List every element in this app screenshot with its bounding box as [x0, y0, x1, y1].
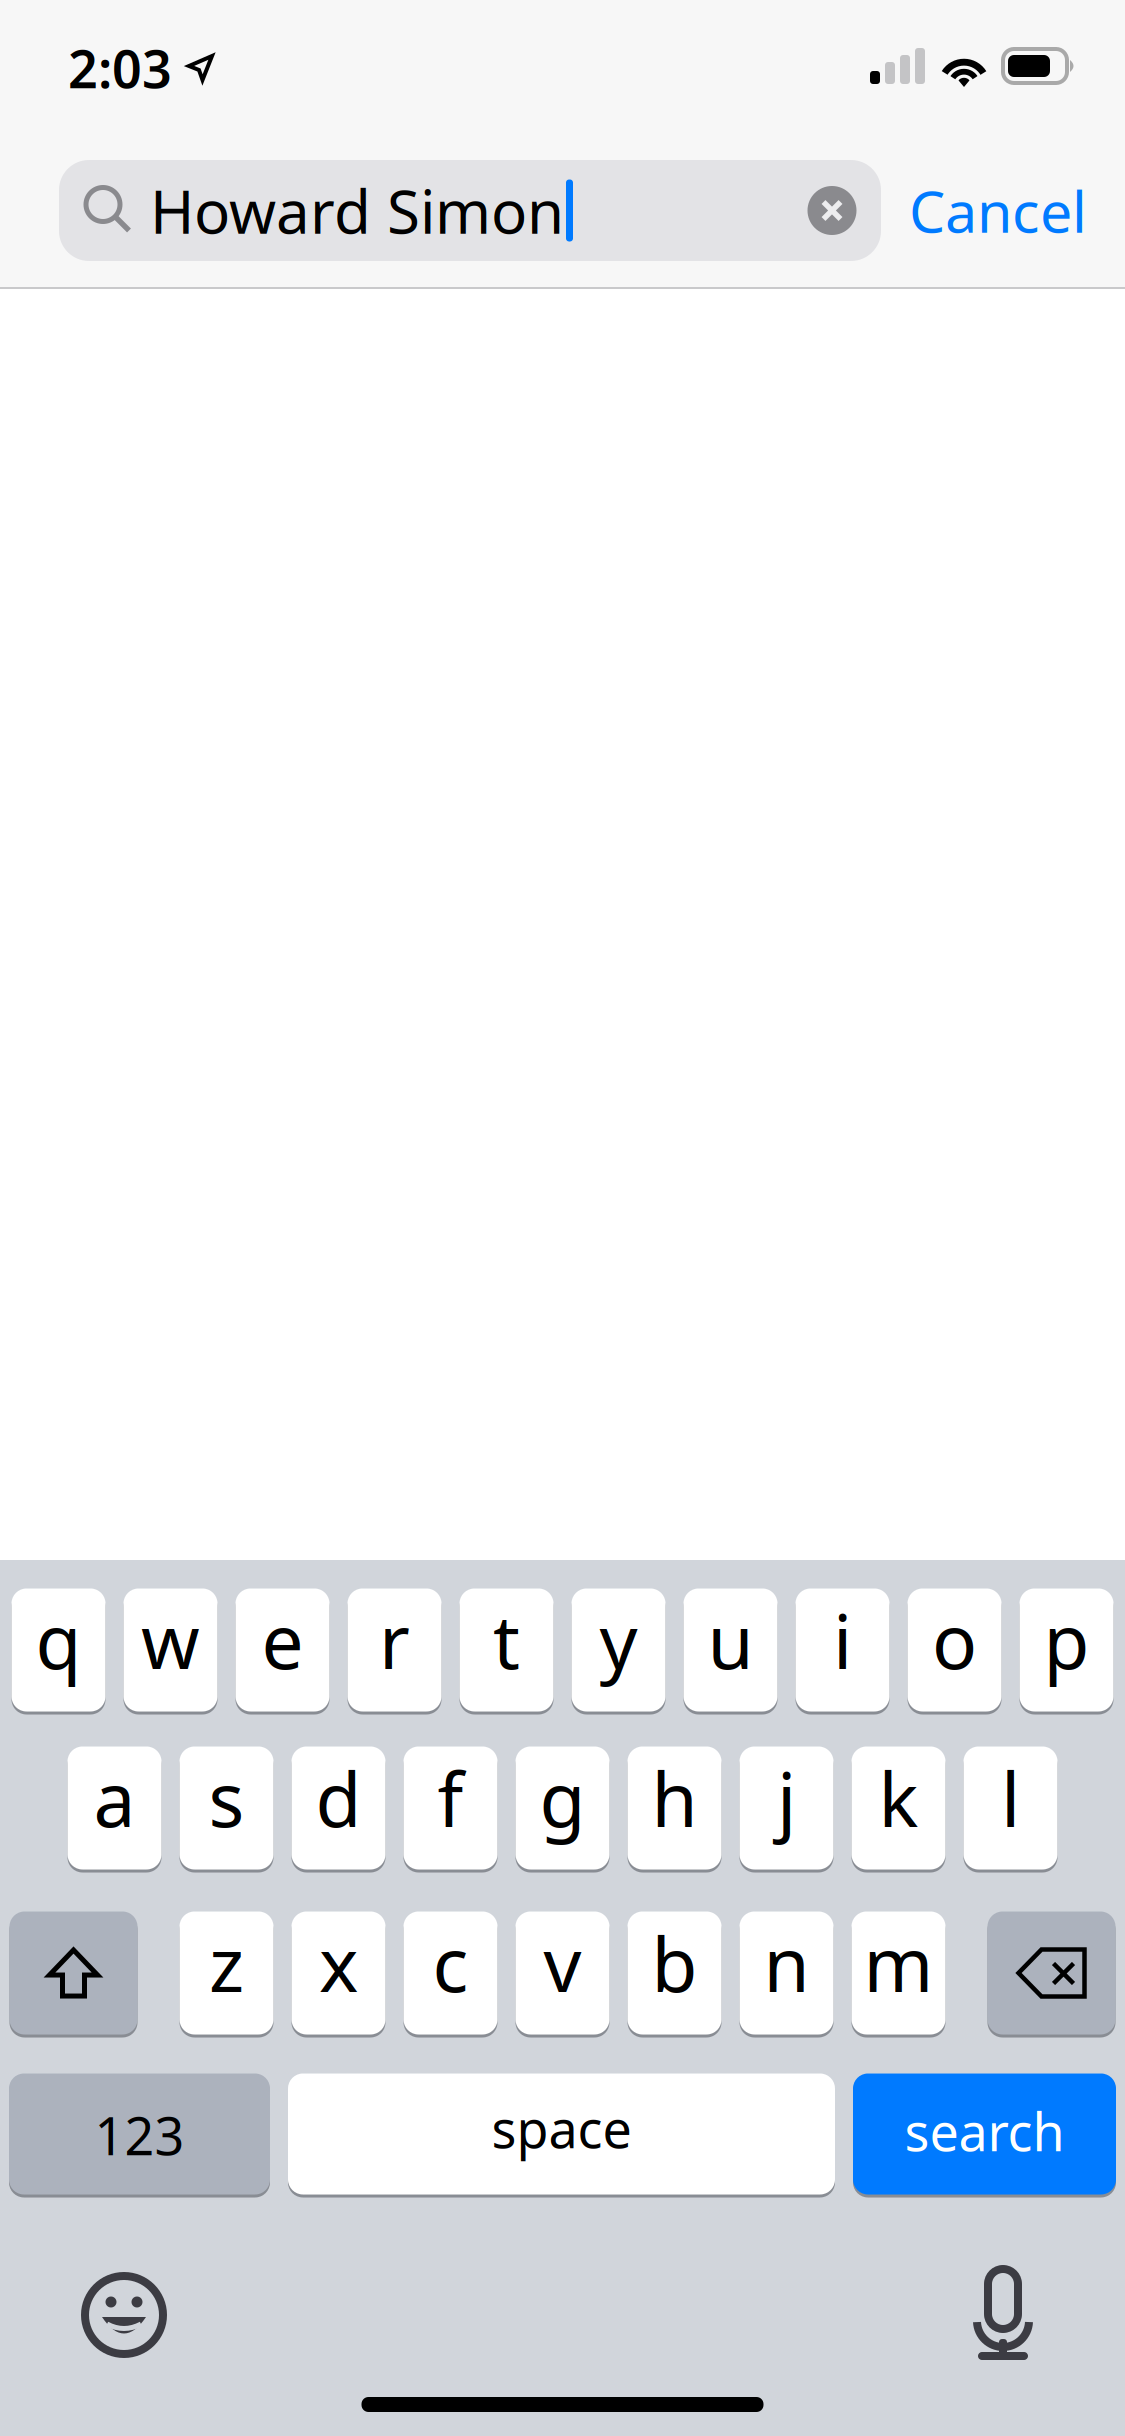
button[interactable]: Dictation [955, 2267, 1051, 2363]
staticText: s [208, 1748, 244, 1848]
staticText: n [763, 1913, 809, 2013]
staticText: j [777, 1748, 796, 1848]
button[interactable]: q [11, 1587, 105, 1713]
button[interactable]: w [123, 1587, 217, 1713]
staticText: 123 [94, 2100, 184, 2170]
staticText: z [209, 1913, 244, 2013]
staticText: y [599, 1590, 637, 1690]
staticText: t [493, 1590, 520, 1690]
staticText: u [707, 1590, 753, 1690]
button[interactable]: y [571, 1587, 665, 1713]
staticText: space [491, 2093, 631, 2163]
button[interactable]: a [67, 1745, 161, 1871]
button[interactable]: r [347, 1587, 441, 1713]
staticText: q [35, 1590, 81, 1690]
button[interactable]: v [515, 1910, 609, 2036]
button[interactable]: b [627, 1910, 721, 2036]
button[interactable]: h [627, 1745, 721, 1871]
staticText: f [437, 1748, 463, 1848]
button[interactable]: Emoji keyboard [76, 2267, 172, 2363]
button[interactable]: l [963, 1745, 1057, 1871]
staticText: Howard Simon [150, 171, 564, 250]
button[interactable]: d [291, 1745, 385, 1871]
staticText: e [261, 1590, 303, 1690]
button[interactable]: k [851, 1745, 945, 1871]
button[interactable]: z [179, 1910, 273, 2036]
button[interactable]: n [739, 1910, 833, 2036]
staticText: h [651, 1748, 697, 1848]
staticText: k [878, 1748, 918, 1848]
staticText: o [932, 1590, 977, 1690]
button[interactable]: e [235, 1587, 329, 1713]
button[interactable]: o [907, 1587, 1001, 1713]
button[interactable]: Delete [987, 1910, 1115, 2036]
staticText: b [651, 1913, 697, 2013]
staticText: i [833, 1590, 852, 1690]
button[interactable]: f [403, 1745, 497, 1871]
staticText: l [1001, 1748, 1020, 1848]
button[interactable]: i [795, 1587, 889, 1713]
button[interactable]: t [459, 1587, 553, 1713]
button[interactable]: search [853, 2072, 1116, 2196]
staticText: d [315, 1748, 361, 1848]
staticText: v [543, 1913, 581, 2013]
button[interactable]: Shift [9, 1910, 137, 2036]
staticText: g [539, 1748, 585, 1848]
button[interactable]: space [288, 2072, 835, 2196]
button[interactable]: Cancel [881, 160, 1115, 261]
staticText: c [432, 1913, 468, 2013]
button[interactable]: x [291, 1910, 385, 2036]
staticText: p [1043, 1590, 1089, 1690]
button[interactable]: p [1019, 1587, 1113, 1713]
button[interactable]: s [179, 1745, 273, 1871]
staticText: 2:03 [68, 33, 172, 103]
button[interactable]: c [403, 1910, 497, 2036]
staticText: w [141, 1590, 200, 1690]
button[interactable]: 123 [9, 2072, 270, 2196]
button[interactable]: m [851, 1910, 945, 2036]
button[interactable]: g [515, 1745, 609, 1871]
staticText: Cancel [909, 172, 1087, 248]
button[interactable]: Clear text [789, 167, 875, 253]
button[interactable]: j [739, 1745, 833, 1871]
staticText: m [863, 1913, 933, 2013]
staticText: search [904, 2096, 1064, 2166]
staticText: r [379, 1590, 410, 1690]
staticText: x [319, 1913, 358, 2013]
staticText: a [93, 1748, 135, 1848]
button[interactable]: u [683, 1587, 777, 1713]
